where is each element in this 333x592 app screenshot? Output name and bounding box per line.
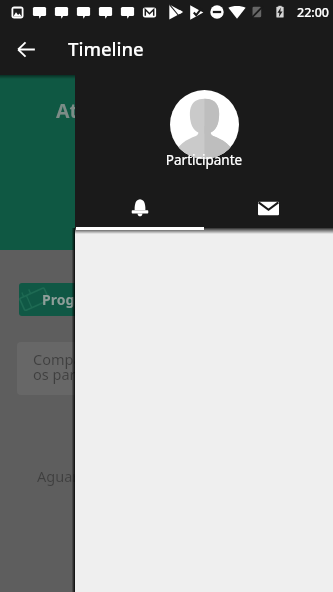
button[interactable]: Voltar bbox=[8, 31, 44, 67]
button[interactable]: Mensagens bbox=[204, 186, 333, 230]
button[interactable]: Fechar bbox=[0, 75, 72, 592]
button[interactable]: Programar bbox=[19, 283, 155, 316]
staticText: Timeline bbox=[68, 36, 144, 61]
staticText: Programar bbox=[42, 290, 117, 309]
staticText: Atividades bbox=[56, 97, 159, 124]
staticText: Compartilhe com bbox=[33, 349, 151, 369]
staticText: Aguardando bbox=[37, 466, 122, 486]
staticText: 22:00 bbox=[297, 4, 330, 21]
button[interactable]: Notificacoes bbox=[75, 186, 204, 230]
staticText: os participantes bbox=[33, 364, 142, 384]
staticText: Participante bbox=[75, 151, 333, 169]
